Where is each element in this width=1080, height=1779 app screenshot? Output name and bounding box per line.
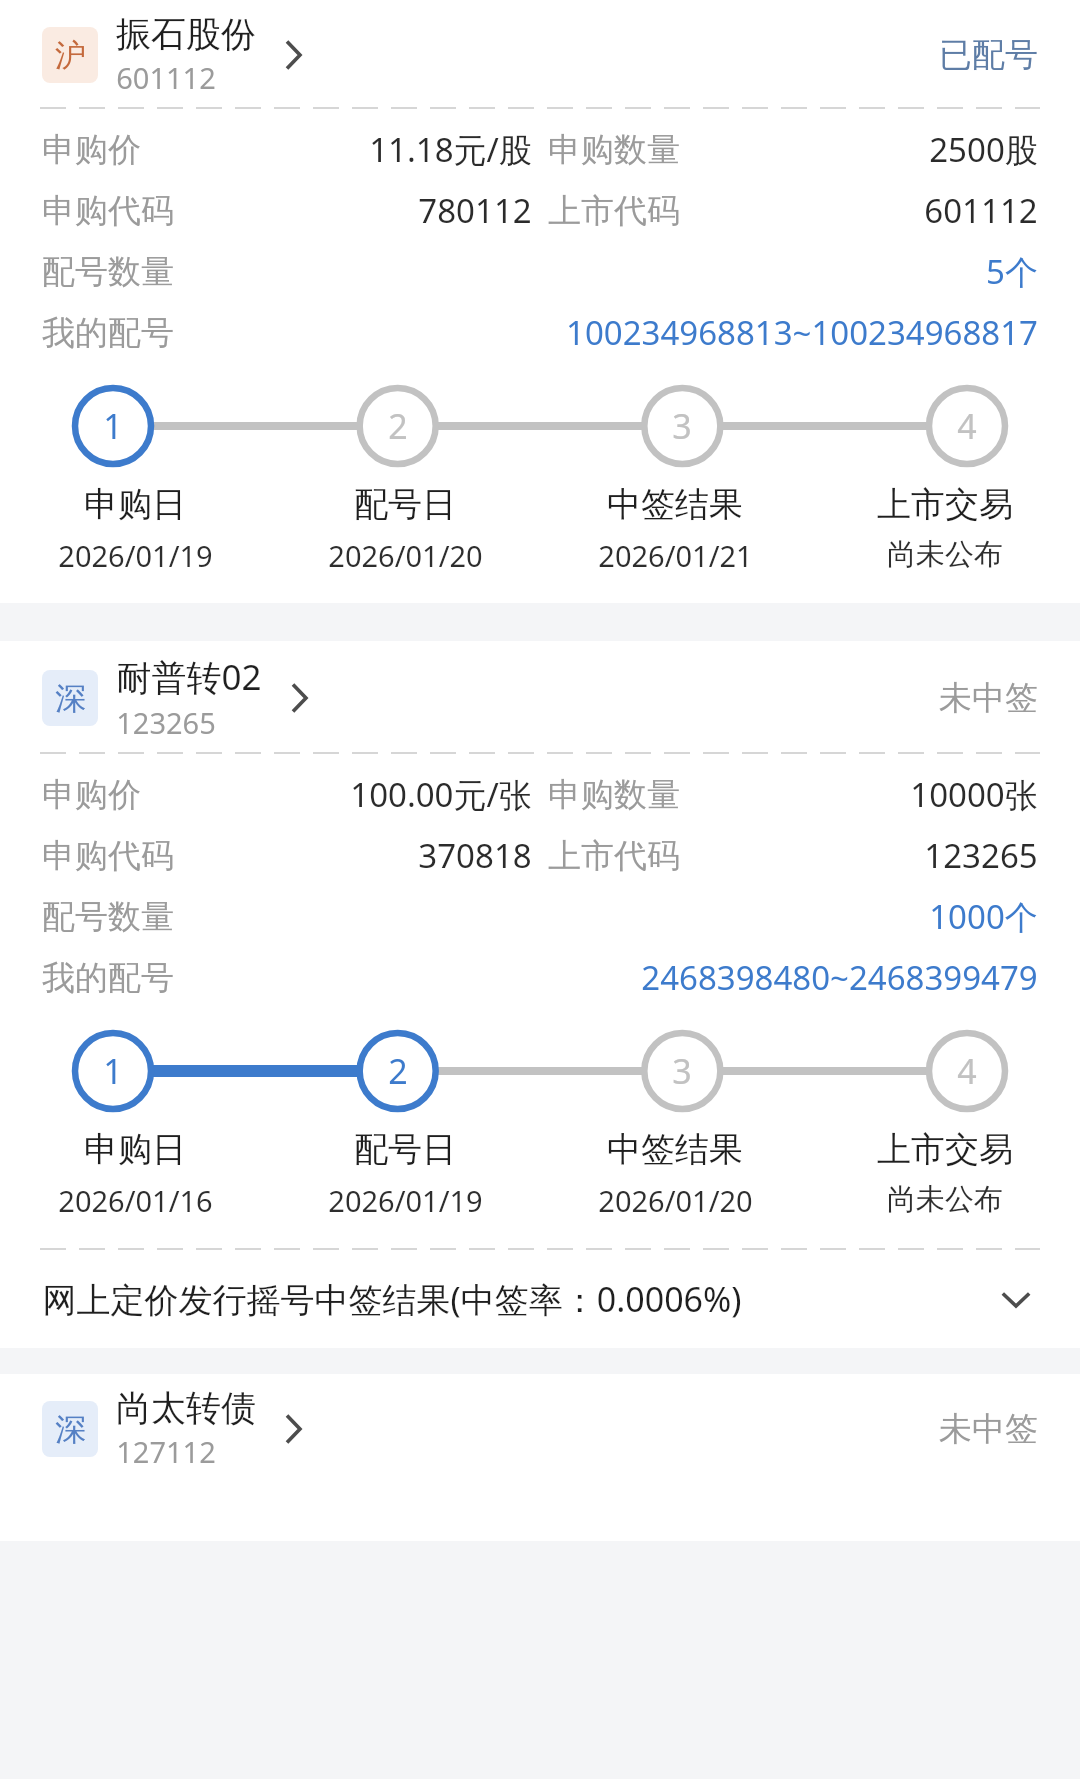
- staticText: 上市交易: [877, 1128, 1013, 1171]
- staticText: 申购数量: [548, 774, 680, 816]
- button[interactable]: 深: [0, 641, 1080, 752]
- staticText: 780112: [418, 188, 532, 233]
- staticText: 100234968813~100234968817: [566, 310, 1038, 355]
- staticText: 我的配号: [42, 957, 174, 999]
- staticText: 2026/01/19: [58, 536, 213, 575]
- staticText: 4: [957, 403, 977, 449]
- staticText: 601112: [116, 58, 216, 97]
- staticText: 配号日: [354, 1128, 456, 1171]
- staticText: 申购日: [84, 483, 186, 526]
- button[interactable]: 深: [0, 1374, 1080, 1481]
- staticText: 中签结果: [607, 1128, 743, 1171]
- staticText: 沪: [55, 36, 86, 75]
- staticText: 3: [672, 1048, 692, 1094]
- staticText: 尚未公布: [887, 1181, 1003, 1218]
- staticText: 2026/01/20: [598, 1181, 753, 1220]
- other: 查看详情: [274, 30, 312, 80]
- staticText: 1: [103, 1048, 123, 1094]
- staticText: 申购代码: [42, 835, 174, 877]
- staticText: 4: [957, 1048, 977, 1094]
- staticText: 370818: [418, 833, 532, 878]
- staticText: 申购价: [42, 129, 141, 171]
- staticText: 3: [672, 403, 692, 449]
- staticText: 上市代码: [548, 835, 680, 877]
- staticText: 601112: [924, 188, 1038, 233]
- staticText: 申购代码: [42, 190, 174, 232]
- staticText: 11.18元/股: [369, 127, 532, 172]
- staticText: 2500股: [929, 127, 1038, 172]
- staticText: 振石股份: [116, 12, 256, 56]
- staticText: 已配号: [939, 34, 1038, 76]
- staticText: 中签结果: [607, 483, 743, 526]
- button[interactable]: 沪: [0, 0, 1080, 107]
- other: 查看详情: [274, 1404, 312, 1454]
- staticText: 1: [103, 403, 123, 449]
- staticText: 123265: [924, 833, 1038, 878]
- staticText: 2026/01/16: [58, 1181, 213, 1220]
- staticText: 申购数量: [548, 129, 680, 171]
- staticText: 配号日: [354, 483, 456, 526]
- other: 查看详情: [280, 673, 318, 723]
- staticText: 上市代码: [548, 190, 680, 232]
- staticText: 123265: [116, 703, 216, 742]
- staticText: 100.00元/张: [350, 772, 532, 817]
- staticText: 5个: [986, 249, 1038, 294]
- staticText: 2026/01/20: [328, 536, 483, 575]
- staticText: 未中签: [939, 1408, 1038, 1450]
- staticText: 申购价: [42, 774, 141, 816]
- other: 展开: [994, 1277, 1038, 1321]
- staticText: 网上定价发行摇号中签结果(中签率：0.0006%): [42, 1276, 742, 1322]
- staticText: 尚未公布: [887, 536, 1003, 573]
- staticText: 耐普转02: [116, 653, 262, 701]
- staticText: 配号数量: [42, 251, 174, 293]
- staticText: 申购日: [84, 1128, 186, 1171]
- button[interactable]: 网上定价发行摇号中签结果(中签率：0.0006%): [0, 1250, 1080, 1348]
- staticText: 尚太转债: [116, 1386, 256, 1430]
- staticText: 深: [55, 679, 86, 718]
- staticText: 未中签: [939, 677, 1038, 719]
- staticText: 127112: [116, 1432, 216, 1471]
- staticText: 配号数量: [42, 896, 174, 938]
- staticText: 2026/01/19: [328, 1181, 483, 1220]
- staticText: 我的配号: [42, 312, 174, 354]
- staticText: 上市交易: [877, 483, 1013, 526]
- staticText: 2468398480~2468399479: [641, 955, 1038, 1000]
- staticText: 2026/01/21: [598, 536, 753, 575]
- staticText: 1000个: [929, 894, 1038, 939]
- staticText: 2: [388, 1048, 408, 1094]
- staticText: 10000张: [910, 772, 1038, 817]
- staticText: 2: [388, 403, 408, 449]
- staticText: 深: [55, 1410, 86, 1449]
